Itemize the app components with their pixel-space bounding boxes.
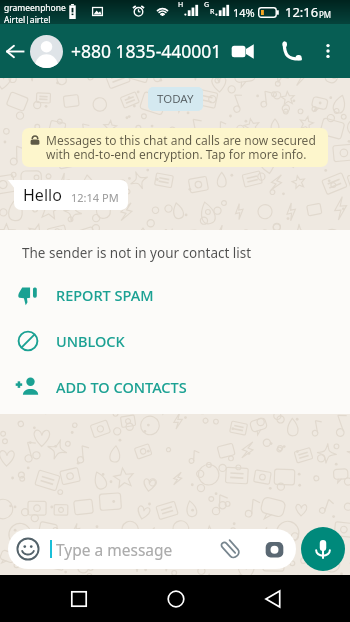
other: Attach <box>220 538 242 560</box>
staticText: 12:14 PM <box>71 190 119 205</box>
staticText: H <box>178 0 184 10</box>
staticText: REPORT SPAM <box>56 285 154 305</box>
staticText: 14% <box>233 5 255 20</box>
staticText: Hello <box>23 184 62 206</box>
button[interactable]: UNBLOCK <box>0 318 350 364</box>
staticText: +880 1835-440001 <box>71 39 222 63</box>
button[interactable]: More options <box>310 33 346 69</box>
button[interactable]: Back <box>0 36 30 66</box>
button[interactable]: Messages to this chat and calls are now … <box>22 128 328 167</box>
button[interactable]: Voice message <box>301 527 345 571</box>
staticText: grameenphone <box>4 2 66 14</box>
staticText: G <box>204 0 210 10</box>
button[interactable]: Call <box>274 33 310 69</box>
button[interactable]: Video call <box>224 33 260 69</box>
button[interactable]: REPORT SPAM <box>0 272 350 318</box>
button[interactable]: Recent apps <box>56 576 101 621</box>
staticText: Airtel|airtel <box>4 14 51 26</box>
button[interactable]: Emoji <box>8 529 296 569</box>
staticText: The sender is not in your contact list <box>22 244 252 262</box>
staticText: UNBLOCK <box>56 331 125 351</box>
staticText: R <box>210 7 215 17</box>
button[interactable]: ADD TO CONTACTS <box>0 364 350 410</box>
button[interactable]: Back <box>250 576 295 621</box>
button[interactable]: Home <box>153 576 198 621</box>
other: Camera <box>264 539 285 560</box>
staticText: Messages to this chat and calls are now … <box>46 132 322 163</box>
staticText: 12:16 <box>285 3 319 21</box>
staticText: Type a message <box>56 539 173 560</box>
staticText: PM <box>319 9 332 20</box>
staticText: ADD TO CONTACTS <box>56 377 187 397</box>
staticText: TODAY <box>157 91 194 107</box>
other: Emoji <box>16 537 40 561</box>
